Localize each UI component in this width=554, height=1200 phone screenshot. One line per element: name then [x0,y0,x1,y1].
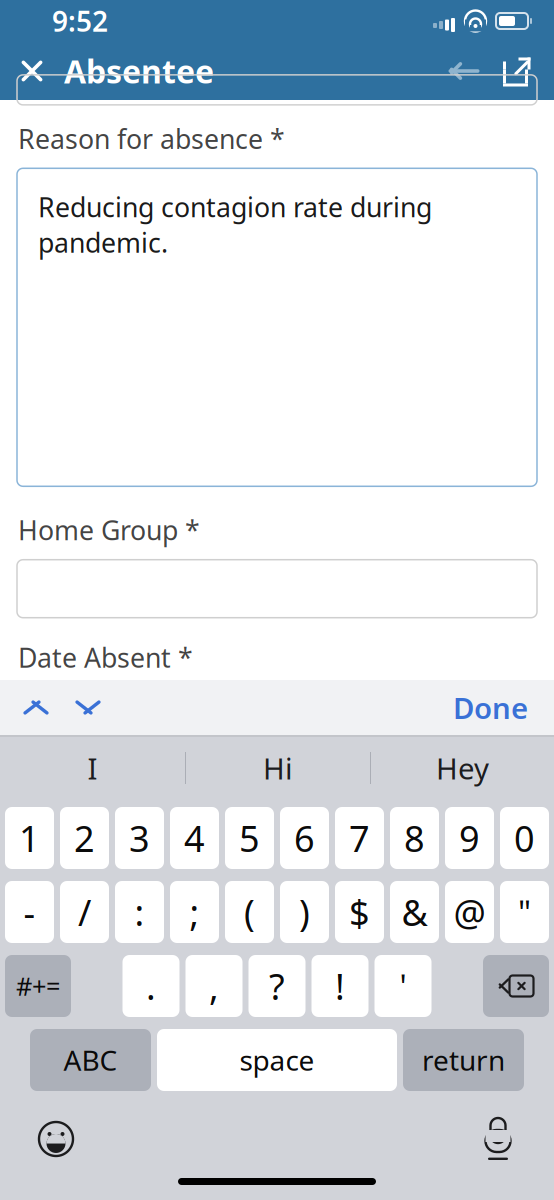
staticText: @ [453,888,485,936]
button[interactable]: 6 [280,807,329,869]
button[interactable]: Done [441,680,540,735]
button[interactable]: : [115,881,164,943]
button[interactable]: & [390,881,439,943]
button[interactable]: , [185,955,242,1017]
staticText: ! [335,962,345,1010]
button[interactable]: Dictate [468,1111,528,1167]
staticText: 3 [129,814,150,862]
staticText: ? [269,962,285,1010]
staticText: ' [399,965,406,1007]
button[interactable]: 3 [115,807,164,869]
staticText: - [23,888,35,936]
button[interactable]: Delete [483,955,549,1017]
staticText: Reason for absence * [18,121,285,156]
staticText: 1 [19,814,40,862]
button[interactable]: ; [170,881,219,943]
button[interactable]: ' [374,955,431,1017]
staticText: Reducing contagion rate during pandemic. [38,189,432,260]
button[interactable]: space [157,1029,397,1091]
staticText: ABC [63,1041,117,1079]
button[interactable]: @ [445,881,494,943]
button[interactable]: 7 [335,807,384,869]
button[interactable]: 1 [5,807,54,869]
staticText: & [401,888,427,936]
button[interactable]: - [5,881,54,943]
button[interactable]: 2 [60,807,109,869]
staticText: #+= [16,969,60,1003]
button[interactable] [17,560,537,618]
button[interactable]: ) [280,881,329,943]
staticText: " [518,891,531,933]
button[interactable]: 8 [390,807,439,869]
staticText: . [146,962,156,1010]
staticText: Done [453,688,528,727]
staticText: ; [189,888,199,936]
staticText: Absentee [64,50,214,92]
button[interactable]: return [403,1029,524,1091]
staticText: Home Group * [18,512,200,548]
staticText: 9:52 [52,2,108,40]
staticText: 6 [294,814,315,862]
staticText: 4 [184,814,205,862]
staticText: 9 [459,814,480,862]
button[interactable]: Emoji keyboard [26,1111,86,1167]
staticText: space [239,1041,314,1079]
staticText: return [422,1041,505,1079]
button[interactable]: Close [4,42,60,100]
button[interactable]: . [122,955,179,1017]
staticText: 8 [404,814,425,862]
button[interactable]: 5 [225,807,274,869]
staticText: / [78,888,91,936]
button[interactable]: $ [335,881,384,943]
button[interactable]: Previous field [10,680,62,735]
button[interactable]: ? [248,955,305,1017]
button[interactable]: Open in browser [492,42,544,100]
button[interactable]: Back [436,42,492,100]
button[interactable]: Reducing contagion rate during pandemic. [17,168,537,486]
button[interactable]: " [500,881,549,943]
staticText: $ [349,888,370,936]
staticText: I [87,748,97,787]
staticText: ) [299,888,310,936]
button[interactable]: Hi [186,737,370,799]
staticText: Date Absent * [18,640,193,675]
staticText: : [134,888,144,936]
button[interactable]: ( [225,881,274,943]
staticText: 0 [514,814,535,862]
button[interactable]: ! [311,955,368,1017]
staticText: 7 [349,814,370,862]
button[interactable]: / [60,881,109,943]
button[interactable]: 4 [170,807,219,869]
staticText: ( [244,888,255,936]
staticText: 2 [74,814,95,862]
button[interactable]: ABC [30,1029,151,1091]
button[interactable]: #+= [5,955,71,1017]
button[interactable]: I [0,737,185,799]
staticText: , [209,962,219,1010]
button[interactable]: Hey [371,737,554,799]
staticText: Hey [436,748,489,787]
staticText: Hi [263,748,293,787]
button[interactable]: 9 [445,807,494,869]
button[interactable]: Next field [62,680,114,735]
staticText: 5 [239,814,260,862]
button[interactable]: 0 [500,807,549,869]
